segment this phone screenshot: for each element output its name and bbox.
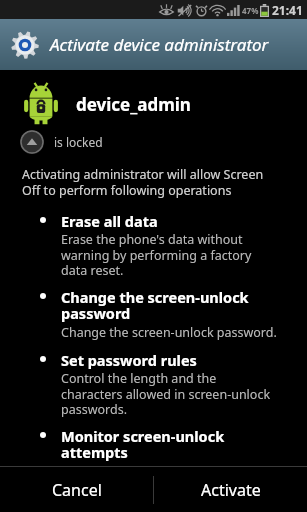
staticText: Set password rules bbox=[61, 350, 197, 370]
staticText: Cancel bbox=[52, 479, 102, 501]
other: Settings bbox=[10, 30, 40, 60]
staticText: Change the screen-unlock password bbox=[61, 287, 249, 324]
other: Device admin app icon bbox=[22, 82, 60, 126]
staticText: Erase all data bbox=[61, 211, 158, 231]
staticText: device_admin bbox=[76, 93, 191, 116]
staticText: Change the screen-unlock password. bbox=[61, 324, 277, 341]
button[interactable]: Cancel bbox=[0, 467, 153, 512]
staticText: Activate bbox=[201, 479, 261, 501]
staticText: Control the length and the characters al… bbox=[61, 370, 271, 417]
staticText: is locked bbox=[54, 134, 103, 150]
button[interactable]: Collapse bbox=[0, 130, 307, 154]
staticText: Monitor screen-unlock attempts bbox=[61, 426, 225, 463]
staticText: Activate device administrator bbox=[50, 33, 269, 56]
staticText: 47% bbox=[242, 5, 259, 16]
staticText: Activating administrator will allow Scre… bbox=[22, 166, 264, 198]
staticText: Erase the phone's data without warning b… bbox=[61, 231, 252, 278]
button[interactable]: Activate bbox=[154, 467, 307, 512]
other: Collapse bbox=[20, 130, 44, 154]
staticText: 21:41 bbox=[272, 2, 303, 18]
